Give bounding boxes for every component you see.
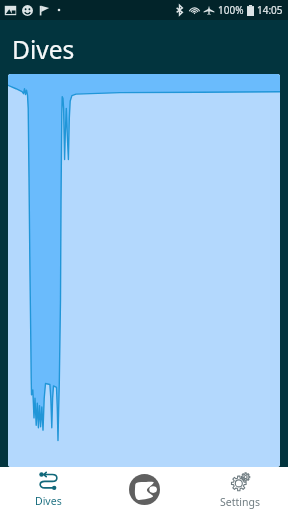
button[interactable]: New dive bbox=[96, 467, 192, 512]
staticText: Settings bbox=[220, 495, 260, 509]
button[interactable]: 67 min to 9 m bbox=[8, 74, 280, 467]
staticText: 14:05 bbox=[257, 3, 283, 17]
staticText: 100% bbox=[218, 3, 244, 17]
staticText: Dives bbox=[12, 33, 75, 66]
staticText: Dives bbox=[35, 494, 62, 508]
button[interactable]: Settings bbox=[192, 467, 288, 512]
button[interactable]: Dives bbox=[0, 467, 96, 512]
